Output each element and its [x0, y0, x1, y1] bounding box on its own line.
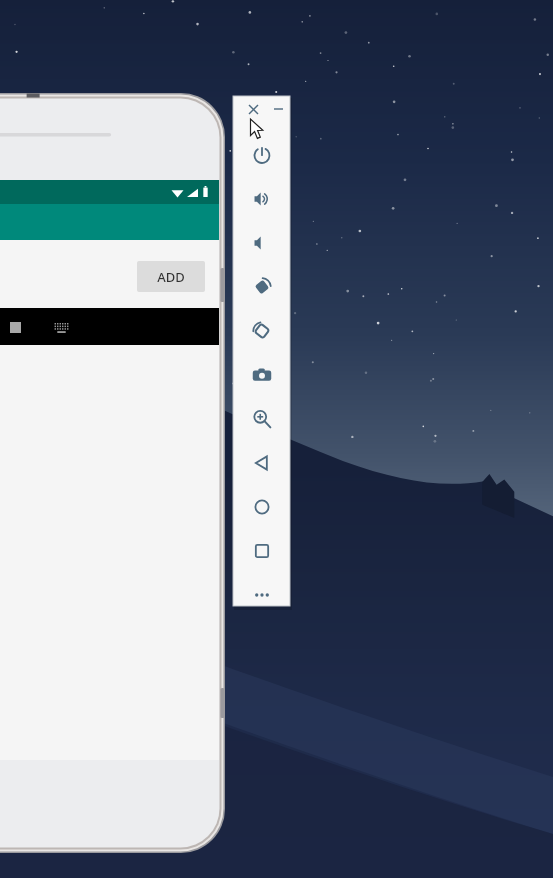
button[interactable]: Rotate right: [248, 317, 276, 345]
button[interactable]: Power: [248, 141, 276, 169]
button[interactable]: Keyboard: [47, 313, 75, 341]
staticText: ADD: [157, 268, 185, 286]
button[interactable]: Volume up: [248, 185, 276, 213]
button[interactable]: Take screenshot: [248, 361, 276, 389]
button[interactable]: Close: [243, 99, 263, 119]
button[interactable]: Volume down: [248, 229, 276, 257]
button[interactable]: Overview: [248, 537, 276, 565]
button[interactable]: Home: [248, 493, 276, 521]
button[interactable]: ADD: [137, 261, 205, 292]
button[interactable]: Zoom: [248, 405, 276, 433]
button[interactable]: Minimize: [268, 99, 288, 119]
button[interactable]: More: [248, 581, 276, 609]
button[interactable]: Rotate left: [248, 273, 276, 301]
button[interactable]: Back: [248, 449, 276, 477]
button[interactable]: Recents: [1, 313, 29, 341]
